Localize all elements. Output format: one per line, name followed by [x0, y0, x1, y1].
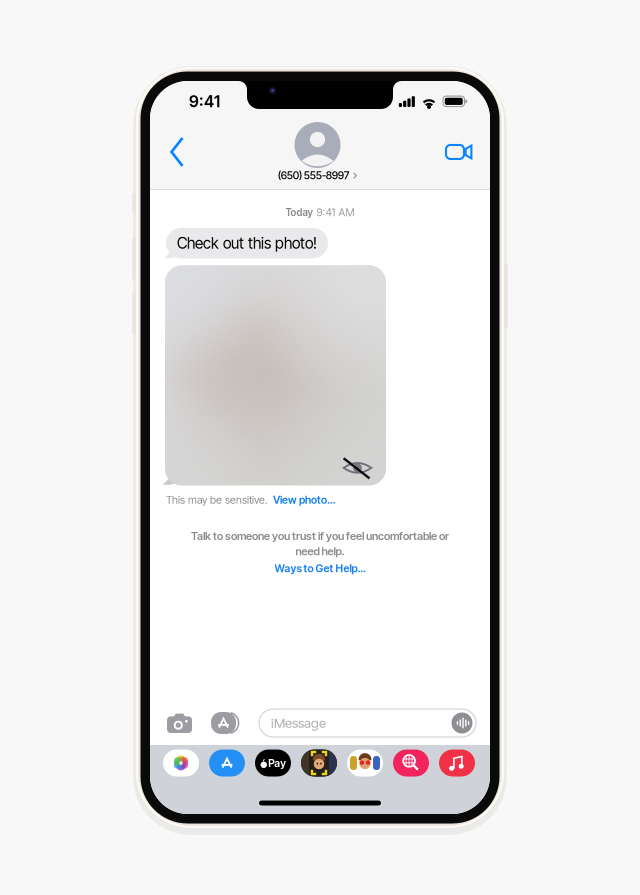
- button[interactable]: App Store: [209, 749, 245, 776]
- button[interactable]: Photos: [163, 749, 199, 776]
- staticText: 9:41 AM: [316, 206, 354, 219]
- staticText: Pay: [268, 756, 286, 769]
- button[interactable]: FaceTime: [446, 130, 473, 174]
- staticText: iMessage: [271, 715, 326, 731]
- staticText: 9:41: [189, 92, 220, 111]
- button[interactable]: Ways to Get Help…: [274, 562, 365, 575]
- button[interactable]: App Store: [211, 712, 240, 734]
- button[interactable]: Stickers: [347, 749, 383, 776]
- button[interactable]: Memoji: [301, 749, 337, 776]
- staticText: Check out this photo!: [177, 234, 317, 252]
- button[interactable]: View photo…: [273, 493, 335, 506]
- staticText: Today: [285, 206, 312, 218]
- button[interactable]: Camera: [167, 713, 192, 733]
- staticText: View photo…: [273, 493, 335, 506]
- staticText: need help.: [295, 545, 344, 558]
- button[interactable]: Back: [167, 130, 189, 174]
- button[interactable]: #images: [393, 749, 429, 776]
- staticText: Ways to Get Help…: [274, 562, 365, 575]
- button[interactable]: Music: [439, 749, 475, 776]
- staticText: Talk to someone you trust if you feel un…: [191, 529, 449, 543]
- staticText: (650) 555-8997: [278, 169, 350, 182]
- staticText: This may be sensitive.: [166, 493, 268, 506]
- button[interactable]: Apple Pay: [255, 749, 291, 776]
